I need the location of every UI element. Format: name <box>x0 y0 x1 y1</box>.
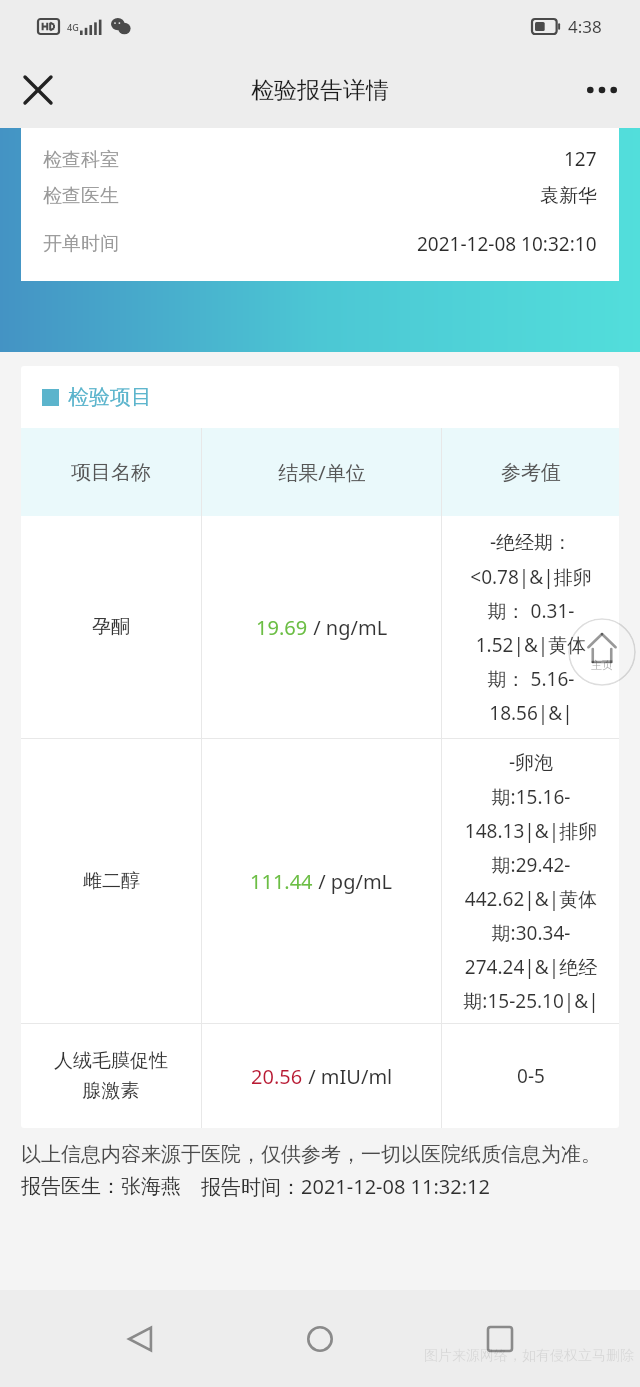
staticText: 项目名称 <box>71 460 151 485</box>
staticText: 报告时间：2021-12-08 11:32:12 <box>201 1173 490 1200</box>
staticText: 参考值 <box>501 460 561 485</box>
staticText: -卵泡 期:15.16- 148.13|&|排卵 期:29.42- 442.62… <box>463 749 599 1014</box>
staticText: 检查医生 <box>43 184 119 208</box>
staticText: 127 <box>564 146 597 172</box>
staticText: 19.69 <box>256 614 308 641</box>
staticText: 图片来源网络，如有侵权立马删除 <box>424 1347 634 1365</box>
staticText: -绝经期： <0.78|&|排卵 期： 0.31- 1.52|&|黄体 期： 5… <box>470 529 592 725</box>
staticText: 4:38 <box>568 15 602 38</box>
staticText: 结果/单位 <box>278 459 366 486</box>
button[interactable]: Home <box>280 1299 360 1379</box>
staticText: 2021-12-08 10:32:10 <box>417 231 597 257</box>
staticText: 检验报告详情 <box>251 76 389 105</box>
staticText: 检查科室 <box>43 148 119 172</box>
button[interactable]: Home <box>568 618 636 686</box>
staticText: 人绒毛膜促性 腺激素 <box>54 1049 168 1103</box>
button[interactable]: Back <box>100 1299 180 1379</box>
button[interactable]: 雌二醇 <box>21 739 619 1023</box>
staticText: 4G <box>67 21 79 33</box>
staticText: 20.56 <box>251 1063 303 1090</box>
staticText: / pg/mL <box>313 868 393 895</box>
staticText: 以上信息内容来源于医院，仅供参考，一切以医院纸质信息为准。 <box>21 1142 619 1167</box>
button[interactable]: 人绒毛膜促性 腺激素 <box>21 1024 619 1128</box>
button[interactable]: 孕酮 <box>21 516 619 738</box>
staticText: 报告医生：张海燕 <box>21 1174 181 1199</box>
staticText: 主页 <box>591 658 613 672</box>
staticText: 孕酮 <box>92 615 130 639</box>
button[interactable]: Close <box>10 62 66 118</box>
staticText: 0-5 <box>517 1063 545 1089</box>
staticText: / ng/mL <box>308 614 388 641</box>
button[interactable]: More options <box>574 62 630 118</box>
staticText: / mIU/ml <box>303 1063 393 1090</box>
staticText: 袁新华 <box>540 184 597 208</box>
staticText: 开单时间 <box>43 232 119 256</box>
staticText: 检验项目 <box>68 384 152 410</box>
staticText: 雌二醇 <box>83 869 140 893</box>
button[interactable]: Recent apps <box>460 1299 540 1379</box>
staticText: 111.44 <box>250 868 313 895</box>
